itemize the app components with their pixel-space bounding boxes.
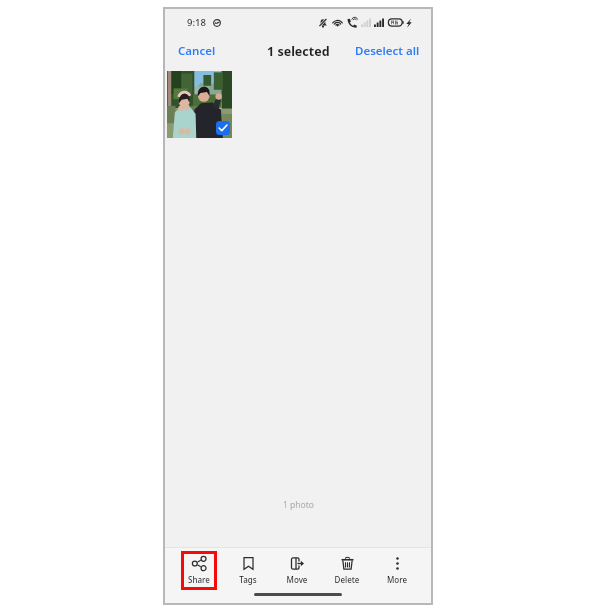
button[interactable]: Share [181,551,217,590]
staticText: 1 selected [267,43,330,60]
button[interactable]: Cancel [165,38,228,64]
button[interactable]: Tags [230,551,266,590]
other: Share [192,556,207,571]
button[interactable]: Deselect all [343,38,431,64]
staticText: 1 photo [283,499,314,511]
staticText: Deselect all [355,43,420,59]
staticText: Delete [332,574,362,585]
button[interactable]: More [379,551,415,590]
other: Tags [241,556,256,571]
button[interactable]: Delete [329,551,365,590]
staticText: Cancel [178,43,216,59]
staticText: 9:18 [187,16,206,29]
staticText: More [382,574,412,585]
button[interactable]: Photo, selected [167,71,232,138]
other: More [390,556,405,571]
other: Delete [340,556,355,571]
other: Move [290,556,305,571]
button[interactable]: Move [279,551,315,590]
staticText: Move [282,574,312,585]
staticText: Tags [233,574,263,585]
staticText: Share [184,574,214,585]
